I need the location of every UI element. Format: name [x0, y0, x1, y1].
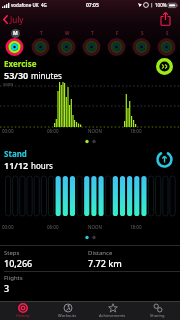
staticText: W [65, 30, 70, 36]
staticText: 53/30 [4, 69, 29, 81]
staticText: Exercise [4, 58, 37, 69]
button[interactable]: F [107, 28, 126, 56]
button[interactable]: Steps [0, 246, 180, 271]
staticText: Stand [4, 148, 27, 159]
button[interactable]: W [57, 28, 76, 56]
staticText: NOON [88, 224, 102, 230]
staticText: Flights [4, 274, 23, 282]
staticText: 00:00 [2, 128, 14, 134]
staticText: Steps [4, 249, 20, 257]
staticText: History [16, 313, 30, 318]
staticText: Achievements [99, 313, 126, 318]
staticText: F [116, 30, 119, 36]
staticText: S [141, 30, 144, 36]
button[interactable]: Exercise [4, 56, 174, 82]
staticText: T [40, 30, 43, 36]
staticText: Workouts [58, 313, 77, 318]
button[interactable]: Workouts [45, 302, 90, 320]
staticText: vodafone UK 4G [11, 2, 47, 8]
staticText: 18:00 [130, 224, 142, 230]
button[interactable]: S [132, 28, 151, 56]
button[interactable] [160, 12, 171, 26]
staticText: 11/12 [4, 159, 29, 171]
button[interactable]: History [0, 302, 45, 320]
staticText: 06:00 [47, 224, 59, 230]
staticText: 06:00 [47, 128, 59, 134]
button[interactable]: M [5, 28, 24, 56]
staticText: Distance [88, 249, 113, 257]
staticText: T [91, 30, 94, 36]
staticText: Sharing [150, 313, 165, 318]
staticText: 07:05 [86, 2, 99, 9]
staticText: 3 [4, 282, 10, 294]
staticText: 100% [155, 2, 167, 8]
button[interactable]: T [31, 28, 50, 56]
staticText: minutes [29, 70, 62, 81]
staticText: hours [29, 160, 53, 171]
button[interactable]: Achievements [90, 302, 135, 320]
button[interactable]: July [3, 14, 24, 25]
button[interactable]: Flights [4, 274, 180, 301]
staticText: 5MIN [3, 82, 14, 87]
staticText: July [10, 14, 24, 25]
button[interactable]: Stand [4, 145, 174, 173]
staticText: M [13, 30, 18, 37]
button[interactable]: Sharing [135, 302, 180, 320]
button[interactable]: S [157, 28, 176, 56]
staticText: 18:00 [130, 128, 142, 134]
button[interactable]: T [82, 28, 101, 56]
staticText: NOON [88, 128, 102, 134]
staticText: S [166, 30, 169, 36]
staticText: 10,266 [4, 257, 33, 269]
staticText: 00:00 [2, 224, 14, 230]
staticText: 7.72 km [88, 257, 122, 269]
